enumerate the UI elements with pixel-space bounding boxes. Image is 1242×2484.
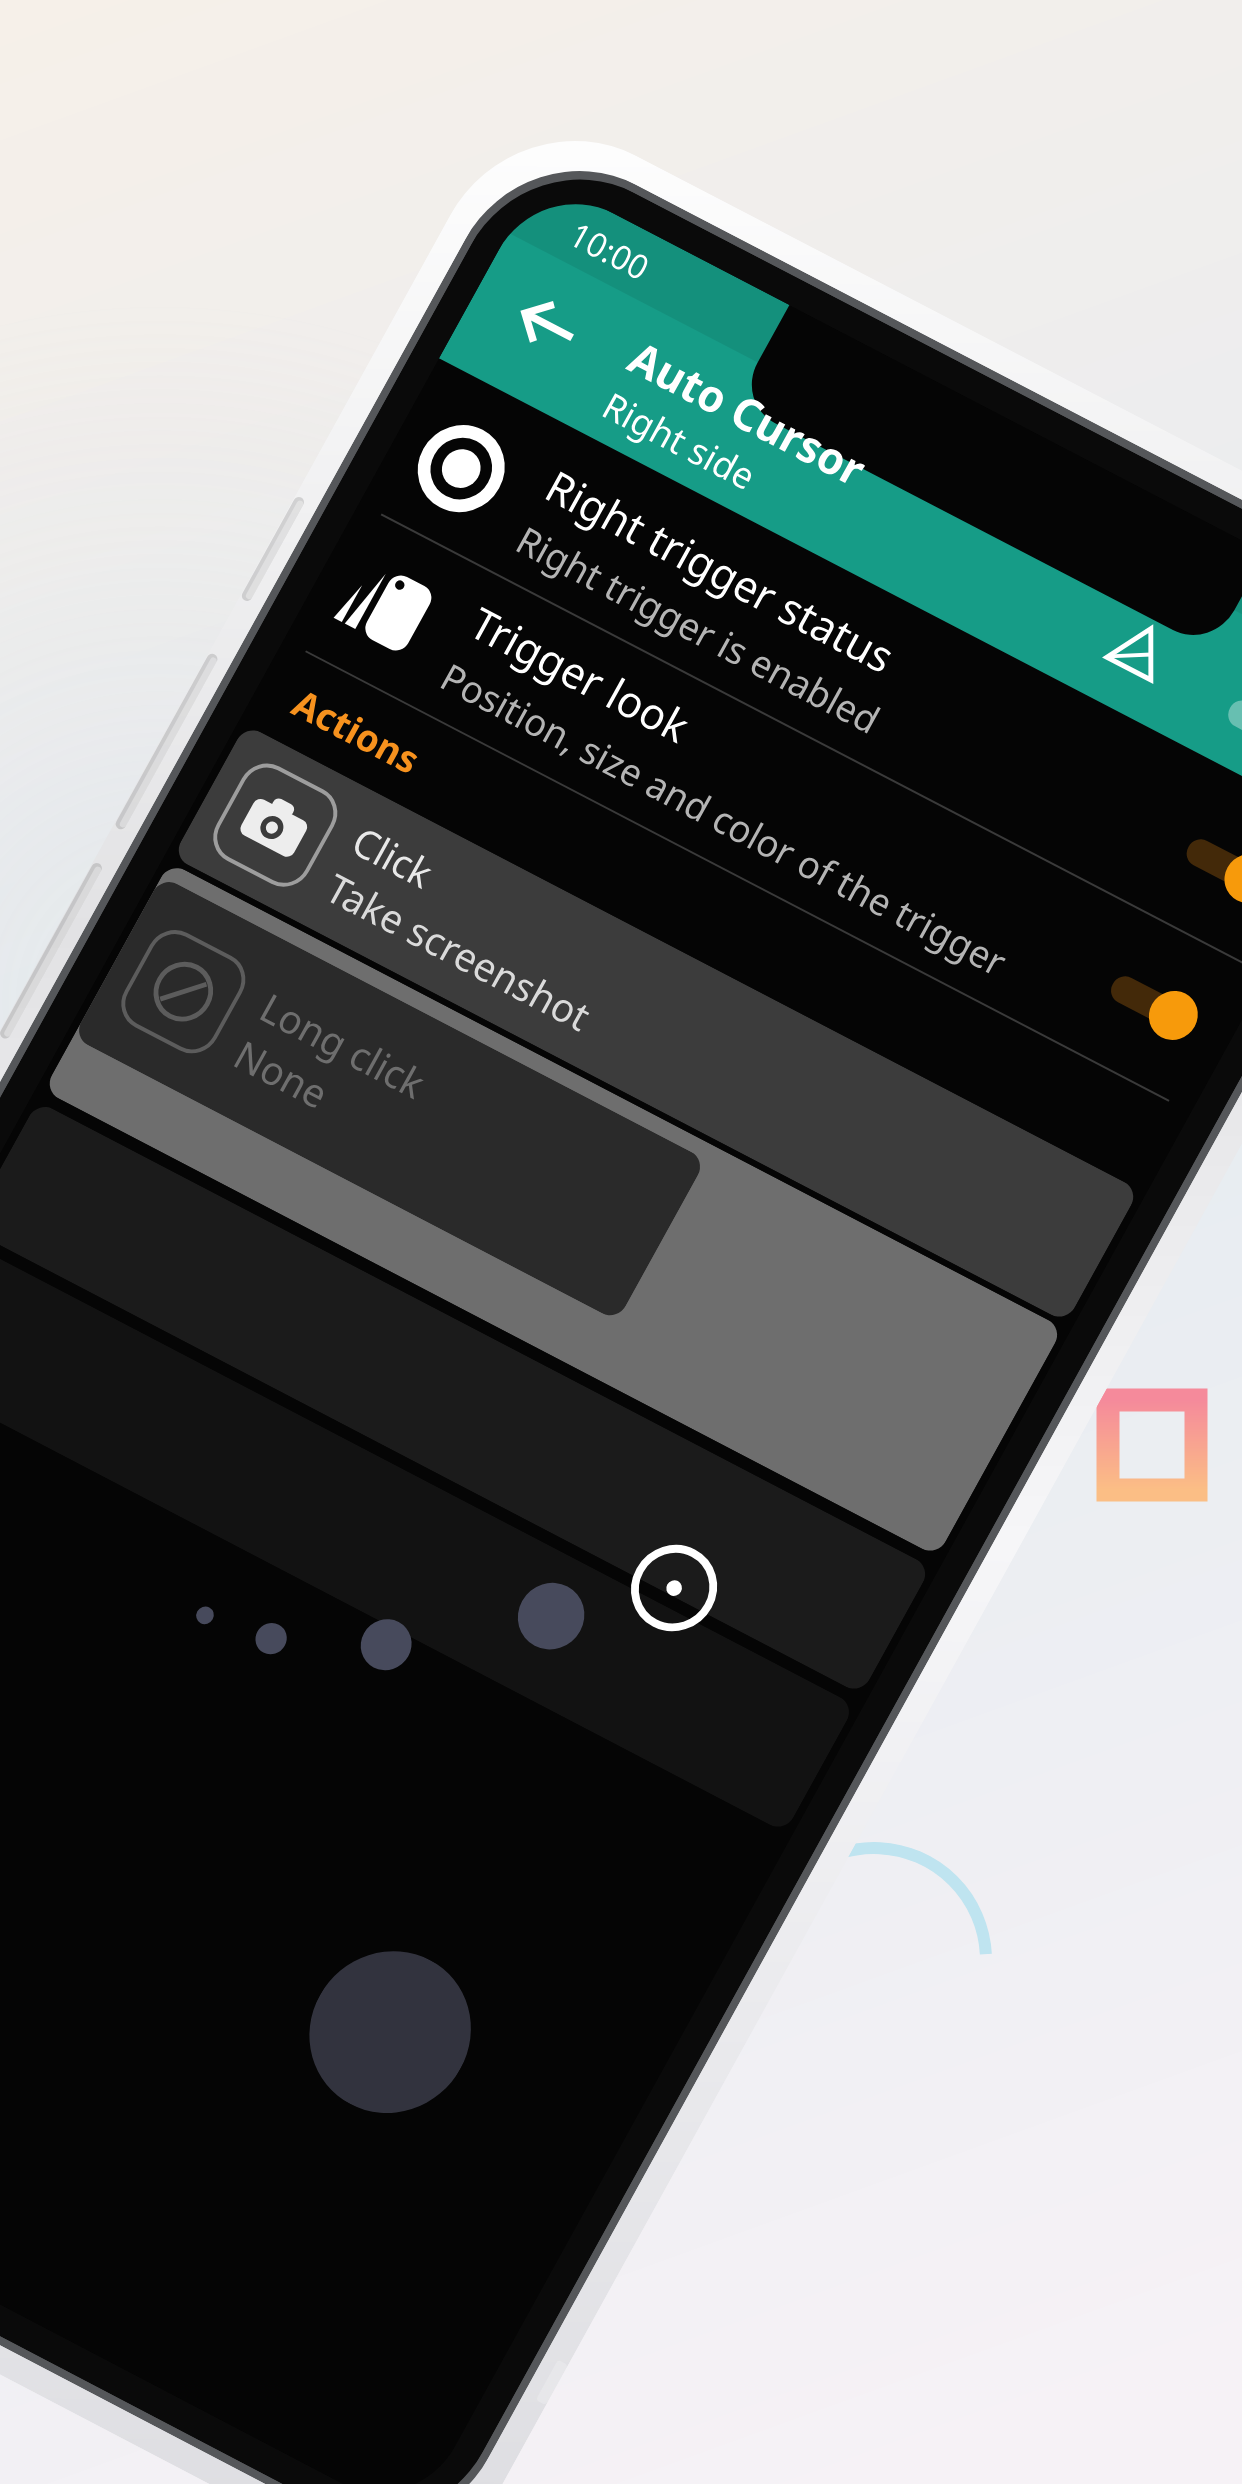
- button[interactable]: Enable trigger: [1218, 686, 1242, 772]
- button[interactable]: Back: [498, 276, 599, 376]
- button[interactable]: Right trigger status: [360, 367, 1242, 974]
- staticText: Right trigger is enabled: [508, 514, 889, 744]
- button[interactable]: Trigger look: [284, 504, 1242, 1111]
- button[interactable]: Click: [172, 724, 1140, 1323]
- staticText: Position, size and color of the trigger: [432, 650, 1016, 987]
- staticText: 10:00: [561, 211, 657, 290]
- staticText: None: [225, 1027, 338, 1119]
- staticText: Actions: [284, 677, 430, 785]
- button[interactable]: Long click: [73, 876, 706, 1321]
- staticText: Auto Cursor: [619, 327, 877, 499]
- staticText: Right side: [594, 380, 766, 500]
- staticText: Take screenshot: [317, 861, 601, 1042]
- staticText: Right trigger status: [536, 456, 906, 686]
- staticText: Trigger look: [460, 593, 701, 755]
- staticText: Click: [343, 813, 443, 899]
- button[interactable]: [43, 862, 1063, 1557]
- button[interactable]: Screen cast: [1100, 609, 1180, 688]
- staticText: Long click: [251, 980, 436, 1110]
